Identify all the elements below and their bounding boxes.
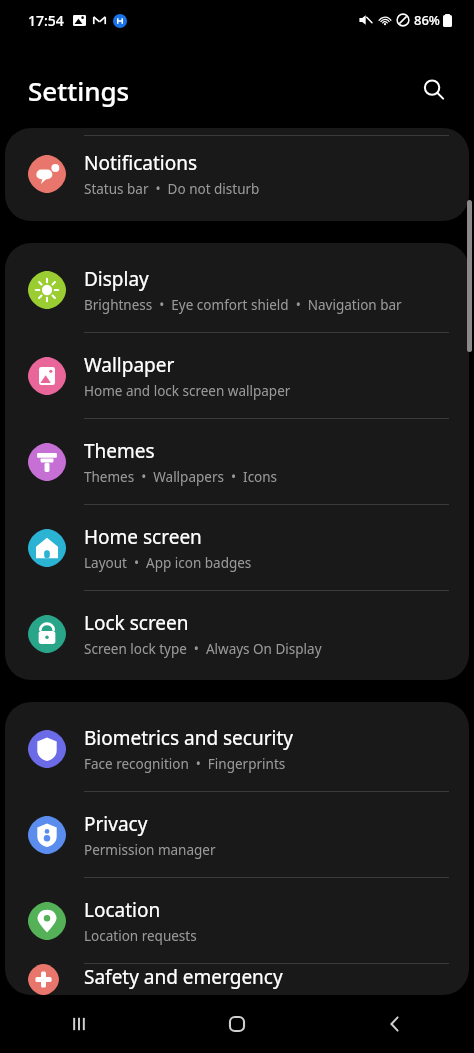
button[interactable]: Search [412, 68, 456, 112]
staticText: Display [84, 266, 149, 292]
staticText: Face recognition • Fingerprints [84, 755, 286, 773]
button[interactable]: Location [5, 878, 469, 963]
button[interactable]: Display [5, 247, 469, 332]
staticText: Permission manager [84, 841, 216, 859]
button[interactable]: Safety and emergency [5, 964, 469, 995]
staticText: Wallpaper [84, 352, 175, 378]
staticText: Home and lock screen wallpaper [84, 382, 291, 400]
staticText: Themes [84, 438, 155, 464]
button[interactable]: Privacy [5, 792, 469, 877]
staticText: 86% [414, 11, 440, 29]
staticText: 17:54 [28, 11, 64, 30]
button[interactable]: Themes [5, 419, 469, 504]
button[interactable]: Home screen [5, 505, 469, 590]
staticText: Lock screen [84, 610, 189, 636]
staticText: Status bar • Do not disturb [84, 180, 260, 198]
staticText: Home screen [84, 524, 202, 550]
button[interactable]: Recent apps [0, 995, 158, 1053]
button[interactable]: Biometrics and security [5, 706, 469, 791]
button[interactable]: Home [158, 995, 316, 1053]
staticText: Settings [28, 73, 130, 108]
staticText: Notifications [84, 150, 198, 176]
staticText: Location [84, 897, 161, 923]
button[interactable]: Lock screen [5, 591, 469, 676]
staticText: Layout • App icon badges [84, 554, 252, 572]
staticText: Safety and emergency [84, 964, 283, 990]
button[interactable]: Back [316, 995, 474, 1053]
button[interactable]: Wallpaper [5, 333, 469, 418]
staticText: Screen lock type • Always On Display [84, 640, 322, 658]
staticText: Location requests [84, 927, 197, 945]
staticText: Biometrics and security [84, 725, 294, 751]
button[interactable]: Notifications [5, 136, 469, 212]
staticText: Themes • Wallpapers • Icons [84, 468, 278, 486]
staticText: Brightness • Eye comfort shield • Naviga… [84, 296, 402, 314]
staticText: Privacy [84, 811, 148, 837]
